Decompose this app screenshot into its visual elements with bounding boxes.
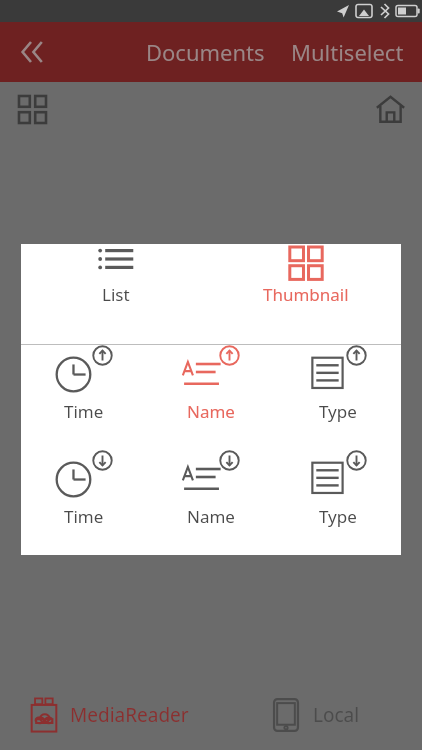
staticText: Documents (146, 37, 265, 67)
staticText: Local (313, 702, 360, 728)
button[interactable]: Local (211, 680, 422, 750)
staticText: Time (64, 400, 104, 423)
button[interactable]: MediaReader (0, 680, 211, 750)
button[interactable]: Type (274, 450, 401, 528)
button[interactable]: Home (366, 85, 414, 133)
staticText: Thumbnail (263, 283, 349, 306)
button[interactable]: Documents (142, 29, 269, 75)
button[interactable]: Multiselect (287, 29, 408, 75)
button[interactable]: Time (21, 345, 147, 423)
staticText: Type (319, 400, 357, 423)
staticText: List (102, 283, 130, 306)
staticText: Type (319, 505, 357, 528)
staticText: Name (187, 505, 235, 528)
button[interactable]: List (21, 244, 211, 306)
staticText: Multiselect (291, 37, 404, 67)
staticText: Name (187, 400, 235, 423)
staticText: MediaReader (70, 702, 189, 728)
button[interactable]: Grid view (8, 85, 56, 133)
button[interactable]: Back (0, 22, 62, 82)
staticText: Time (64, 505, 104, 528)
button[interactable]: Name (147, 345, 274, 423)
button[interactable]: Thumbnail (211, 244, 401, 306)
button[interactable]: Time (21, 450, 147, 528)
button[interactable]: Type (274, 345, 401, 423)
button[interactable]: Name (147, 450, 274, 528)
